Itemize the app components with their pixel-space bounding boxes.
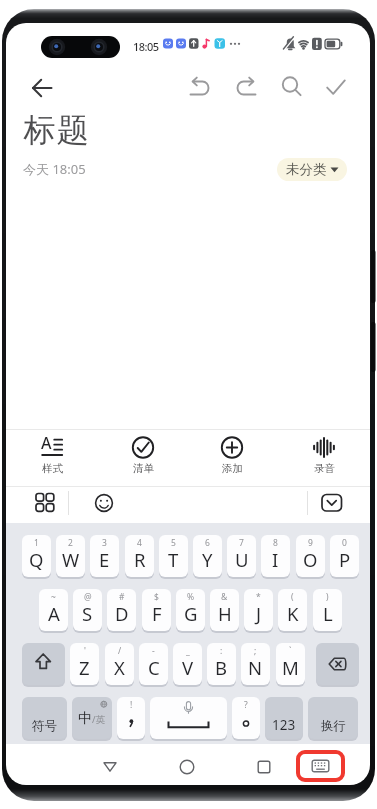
staticText: O (303, 547, 318, 572)
button[interactable] (173, 754, 201, 780)
staticText: ! (130, 699, 133, 711)
button[interactable]: ; (241, 643, 270, 685)
button[interactable]: 换行 (308, 697, 358, 739)
staticText: 录音 (314, 462, 335, 475)
button[interactable]: 6 (193, 535, 222, 577)
button[interactable]: ` (276, 643, 305, 685)
button[interactable]: 添加 (205, 431, 259, 478)
staticText: : (220, 645, 223, 657)
button[interactable]: 0 (330, 535, 359, 577)
button[interactable] (232, 75, 260, 99)
staticText: ; (254, 645, 257, 657)
button[interactable]: * (244, 589, 273, 631)
staticText: 添加 (222, 462, 243, 475)
staticText: I (272, 547, 279, 572)
staticText: 18:05 (133, 39, 159, 54)
staticText: * (256, 591, 261, 603)
button[interactable]: / (105, 643, 134, 685)
staticText: V (182, 655, 194, 680)
button[interactable] (316, 643, 359, 685)
staticText: ~ (51, 591, 56, 603)
button[interactable] (24, 76, 60, 100)
button[interactable]: - (139, 643, 168, 685)
staticText: Q (29, 547, 44, 572)
button[interactable]: @ (73, 589, 102, 631)
button[interactable] (96, 754, 124, 780)
button[interactable]: ! (117, 697, 145, 739)
button[interactable]: _ (173, 643, 202, 685)
button[interactable]: ( (278, 589, 307, 631)
staticText: W (62, 547, 80, 572)
staticText: /英 (92, 713, 106, 726)
staticText: 8 (273, 537, 278, 549)
staticText: 2 (68, 537, 73, 549)
button[interactable] (150, 697, 227, 739)
staticText: M (282, 655, 299, 680)
button[interactable]: 9 (296, 535, 325, 577)
staticText: 符号 (32, 718, 57, 734)
staticText: A (48, 601, 60, 626)
button[interactable] (31, 489, 59, 517)
button[interactable]: 录音 (297, 431, 351, 478)
button[interactable]: 4 (125, 535, 154, 577)
staticText: 换行 (321, 718, 346, 734)
staticText: ) (326, 591, 329, 603)
button[interactable]: 符号 (22, 697, 67, 739)
button[interactable] (22, 643, 65, 685)
staticText: # (119, 591, 125, 603)
staticText: D (115, 601, 129, 626)
button[interactable]: 2 (56, 535, 85, 577)
staticText: 6 (205, 537, 210, 549)
button[interactable] (296, 750, 345, 782)
button[interactable]: 123 (265, 697, 303, 739)
staticText: B (215, 655, 228, 680)
staticText: T (168, 547, 179, 572)
button[interactable]: 未分类 (277, 158, 347, 181)
staticText: 未分类 (286, 161, 327, 178)
staticText: 样式 (42, 462, 63, 475)
button[interactable]: & (210, 589, 239, 631)
staticText: Z (79, 655, 90, 680)
staticText: Y (202, 547, 213, 572)
staticText: N (248, 655, 263, 680)
button[interactable] (250, 754, 278, 780)
staticText: & (221, 591, 228, 603)
button[interactable]: ) (313, 589, 342, 631)
button[interactable]: 5 (159, 535, 188, 577)
button[interactable]: 1 (22, 535, 51, 577)
staticText: K (287, 601, 299, 626)
button[interactable]: ~ (39, 589, 68, 631)
staticText: P (339, 547, 351, 572)
staticText: 清单 (133, 462, 154, 475)
button[interactable] (278, 74, 306, 100)
staticText: 123 (272, 716, 296, 734)
staticText: ' (84, 645, 86, 657)
button[interactable]: 8 (261, 535, 290, 577)
button[interactable] (186, 75, 214, 99)
staticText: L (323, 601, 333, 626)
button[interactable]: % (176, 589, 205, 631)
staticText: J (256, 601, 262, 626)
button[interactable] (90, 489, 118, 517)
button[interactable] (322, 74, 350, 100)
staticText: A (41, 432, 52, 454)
staticText: / (118, 645, 122, 657)
button[interactable]: : (207, 643, 236, 685)
staticText: 今天 18:05 (23, 160, 86, 178)
button[interactable]: 7 (227, 535, 256, 577)
button[interactable]: # (107, 589, 136, 631)
staticText: $ (154, 591, 159, 603)
staticText: 5 (171, 537, 176, 549)
button[interactable]: $ (142, 589, 171, 631)
staticText: % (187, 591, 195, 603)
button[interactable]: 3 (90, 535, 119, 577)
button[interactable]: 中 (72, 697, 112, 739)
staticText: C (148, 655, 160, 680)
button[interactable]: ' (70, 643, 99, 685)
button[interactable]: ? (232, 697, 260, 739)
button[interactable]: A (25, 431, 79, 478)
button[interactable] (318, 491, 346, 515)
staticText: E (99, 547, 110, 572)
button[interactable]: 清单 (116, 431, 170, 478)
staticText: H (218, 601, 232, 626)
